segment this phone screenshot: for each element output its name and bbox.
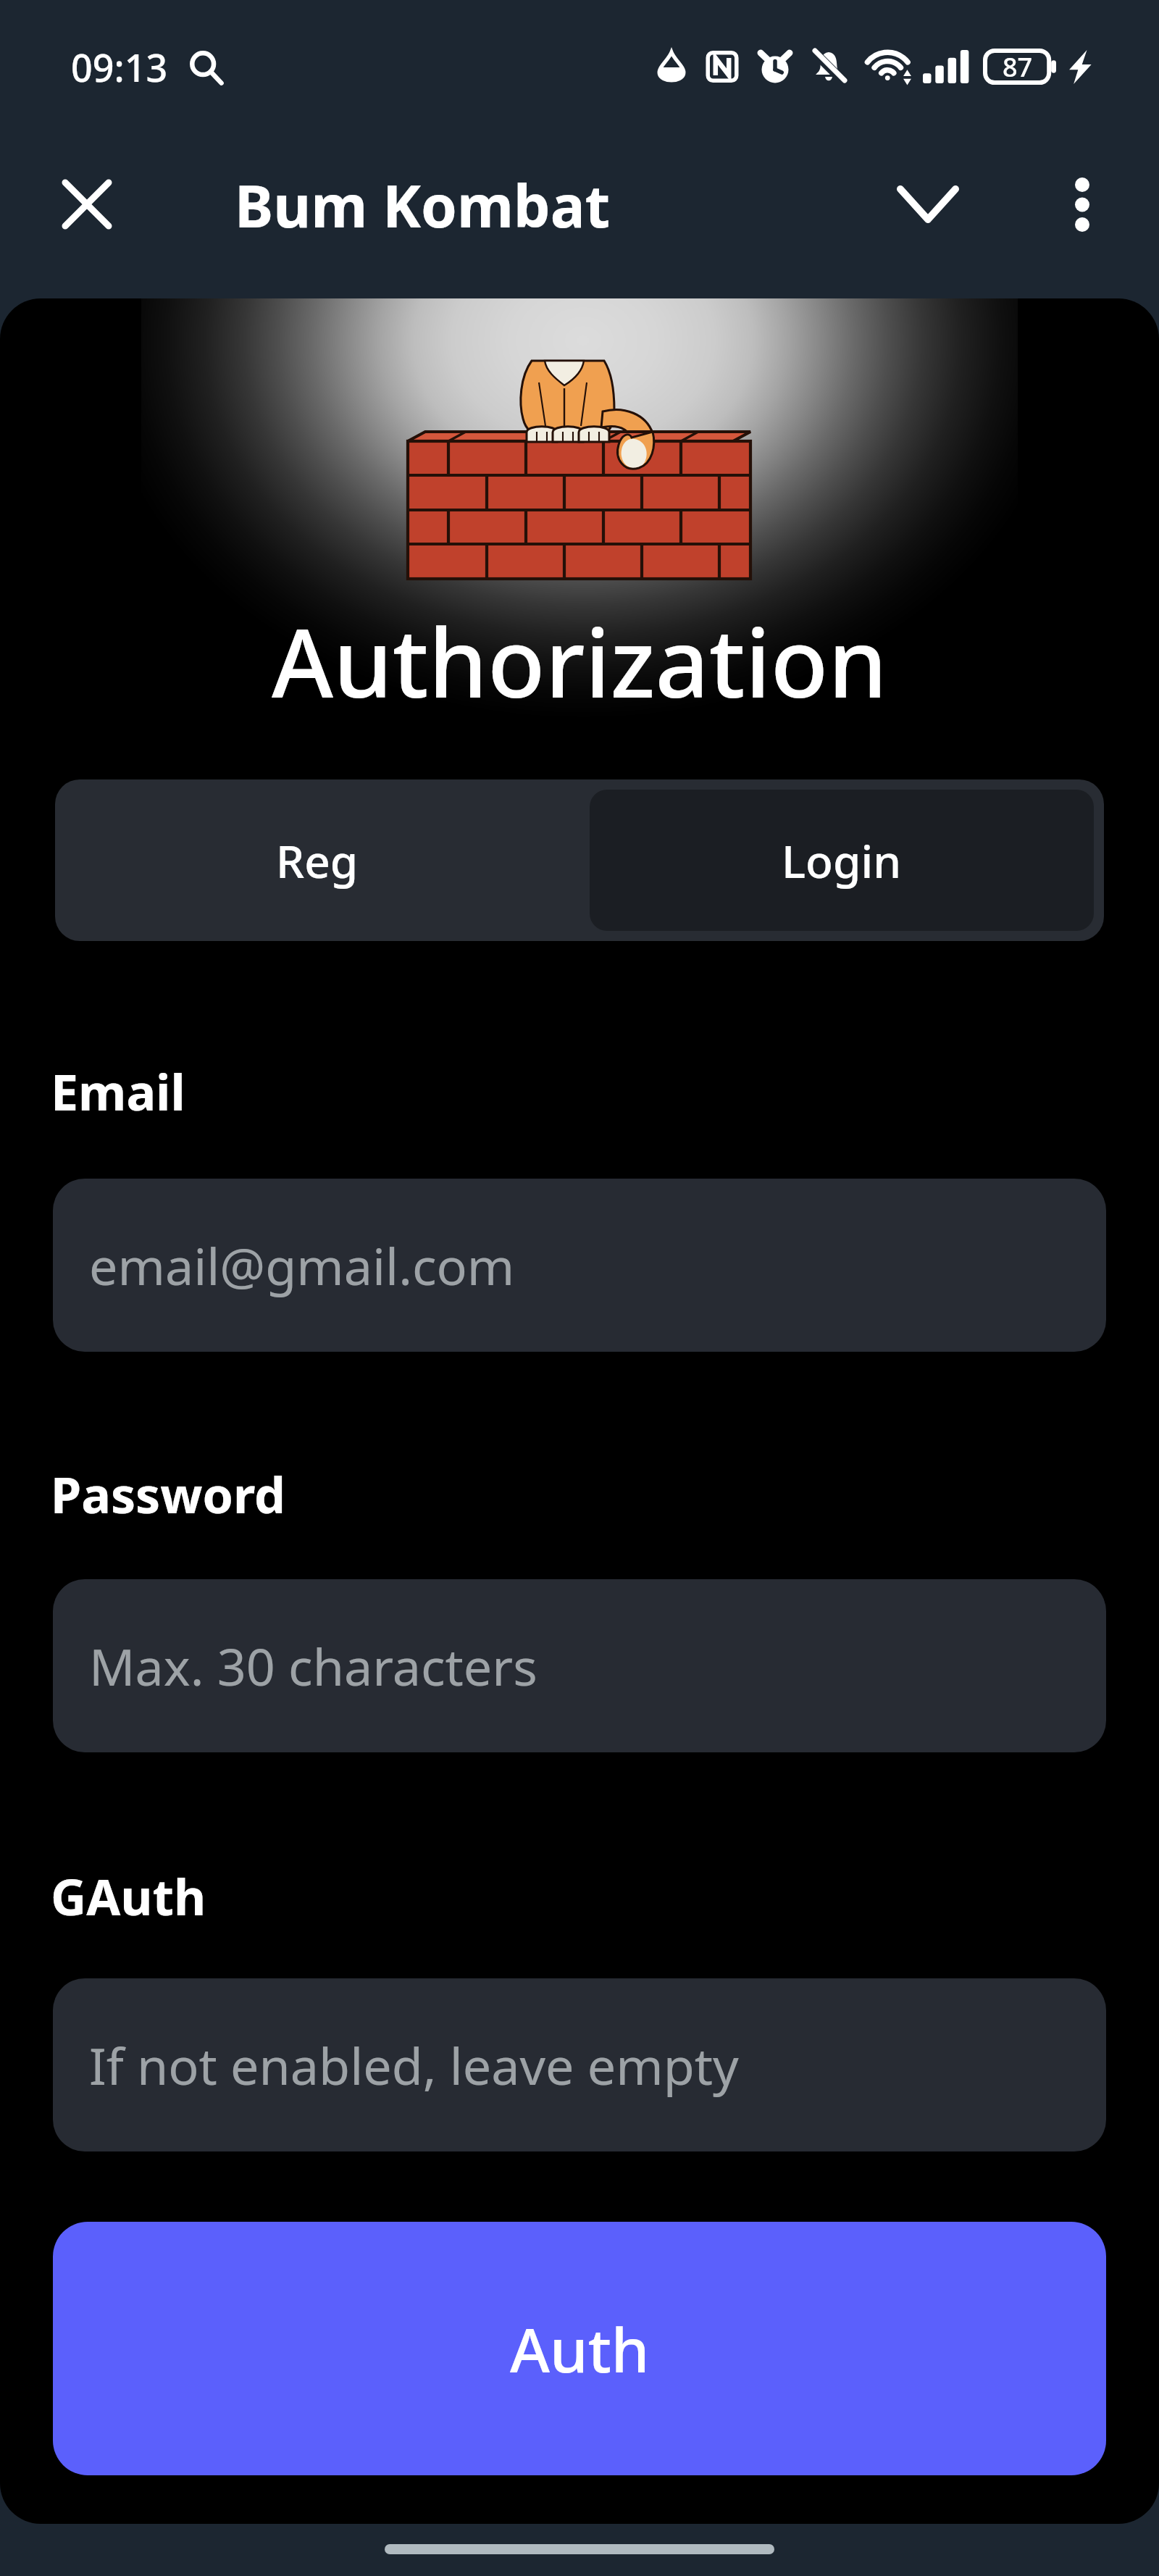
- staticText: Auth: [510, 2307, 650, 2390]
- staticText: GAuth: [51, 1862, 206, 1930]
- staticText: Reg: [276, 830, 359, 891]
- button[interactable]: Reg: [55, 779, 579, 941]
- staticText: 87: [1003, 49, 1033, 84]
- button[interactable]: More options: [1040, 162, 1124, 246]
- button[interactable]: Close: [45, 162, 129, 246]
- staticText: Password: [51, 1460, 285, 1528]
- button[interactable]: email@gmail.com: [53, 1179, 1106, 1352]
- staticText: email@gmail.com: [89, 1231, 515, 1300]
- button[interactable]: Login: [590, 790, 1094, 931]
- staticText: Bum Kombat: [235, 165, 611, 244]
- staticText: Max. 30 characters: [89, 1631, 537, 1700]
- button[interactable]: Expand: [881, 157, 975, 251]
- staticText: Authorization: [272, 597, 887, 725]
- button[interactable]: Auth: [53, 2222, 1106, 2475]
- button[interactable]: Max. 30 characters: [53, 1579, 1106, 1752]
- staticText: 09:13: [71, 41, 168, 93]
- staticText: If not enabled, leave empty: [89, 2031, 739, 2099]
- staticText: Email: [51, 1058, 185, 1125]
- staticText: Login: [782, 830, 902, 891]
- button[interactable]: If not enabled, leave empty: [53, 1978, 1106, 2151]
